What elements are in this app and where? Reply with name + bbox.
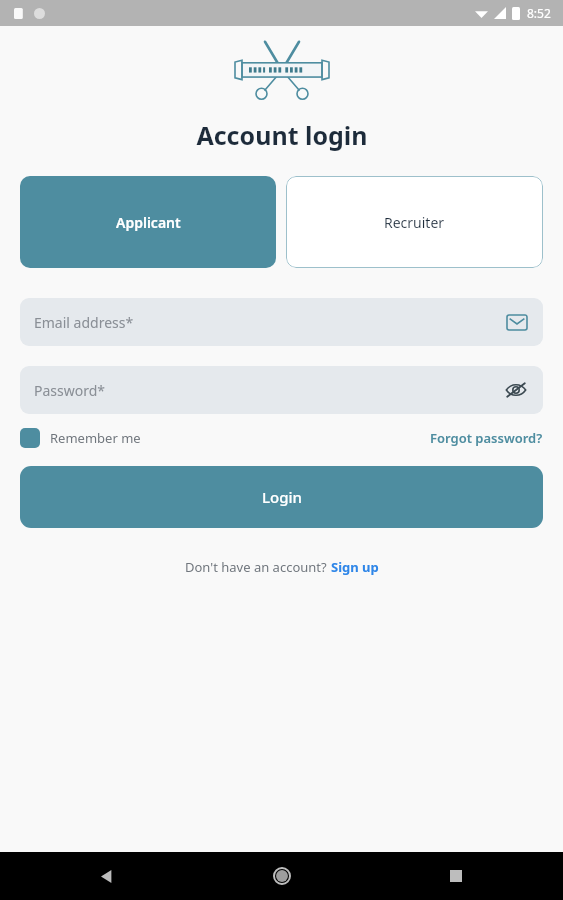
staticText: Don't have an account?: [185, 558, 331, 576]
staticText: Recruiter: [384, 213, 445, 232]
button[interactable]: Email address*: [20, 298, 543, 346]
staticText: Account login: [196, 118, 368, 152]
button[interactable]: Recruiter: [286, 176, 543, 268]
button[interactable]: Applicant: [20, 176, 276, 268]
staticText: Login: [262, 487, 302, 507]
staticText: Sign up: [331, 558, 379, 576]
staticText: 8:52: [527, 5, 551, 21]
button[interactable]: Login: [20, 466, 543, 528]
button[interactable]: Password*: [20, 366, 543, 414]
button[interactable]: Home: [265, 859, 299, 893]
button[interactable]: Forgot password?: [430, 429, 543, 447]
button[interactable]: Back: [90, 859, 124, 893]
button[interactable]: Recents: [439, 859, 473, 893]
button[interactable]: Remember me: [20, 428, 141, 448]
button[interactable]: Sign up: [331, 558, 379, 576]
other: Email: [505, 310, 529, 334]
staticText: Password*: [34, 381, 503, 400]
staticText: Email address*: [34, 313, 505, 332]
button[interactable]: Show password: [503, 377, 529, 403]
staticText: Remember me: [50, 429, 141, 447]
staticText: Applicant: [116, 213, 181, 232]
staticText: Forgot password?: [430, 429, 543, 447]
